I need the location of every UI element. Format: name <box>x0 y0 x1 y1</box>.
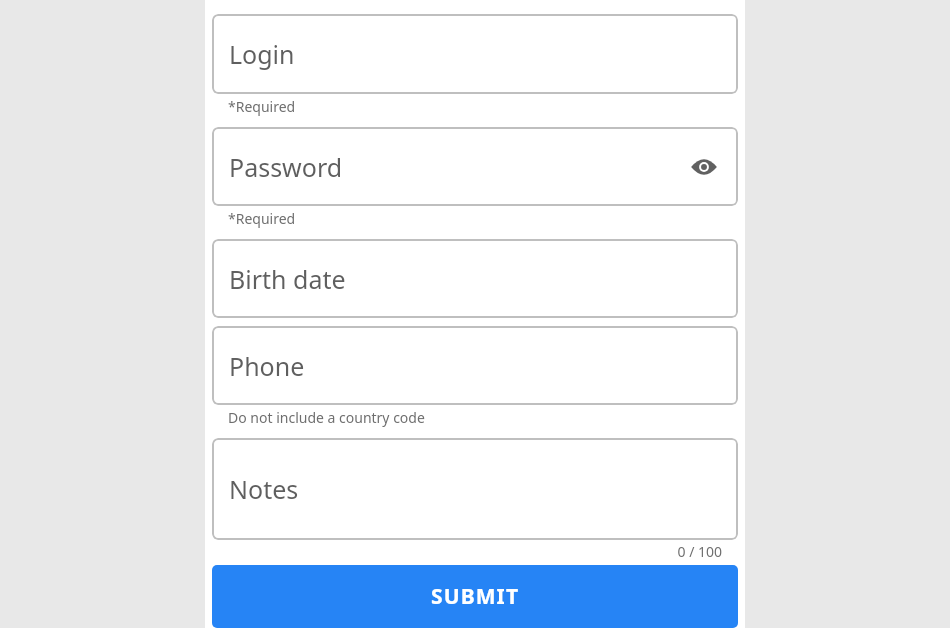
staticText: Login <box>229 37 295 71</box>
staticText: SUBMIT <box>431 582 520 611</box>
staticText: Password <box>229 150 343 184</box>
button[interactable]: Password <box>212 127 738 206</box>
button[interactable]: Login <box>212 14 738 94</box>
staticText: 0 / 100 <box>228 542 722 561</box>
button[interactable]: Toggle password visibility <box>689 152 719 182</box>
staticText: Birth date <box>229 262 346 296</box>
staticText: *Required <box>228 209 722 228</box>
button[interactable]: Phone <box>212 326 738 405</box>
staticText: Do not include a country code <box>228 408 722 427</box>
button[interactable]: Notes <box>212 438 738 540</box>
staticText: Notes <box>229 472 299 506</box>
staticText: *Required <box>228 97 722 116</box>
staticText: Phone <box>229 349 305 383</box>
button[interactable]: Birth date <box>212 239 738 318</box>
button[interactable]: SUBMIT <box>212 565 738 628</box>
